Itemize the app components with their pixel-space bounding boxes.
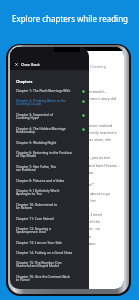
button[interactable]: Chapter 6: Returning to the Position of … — [10, 147, 89, 161]
staticText: came, a little..." — [55, 248, 82, 253]
button[interactable]: Chapter 16: Give the Contract Back to Yu… — [10, 271, 89, 285]
button[interactable]: Chapter 13: I am on Your Side — [10, 237, 89, 247]
staticText: Chapter 11: Cure Hatred — [16, 216, 54, 220]
button[interactable]: Chapter 15: The Number One Shameful and … — [10, 257, 89, 271]
staticText: Chapter 4: The Hidden Marriage Relations… — [16, 126, 66, 134]
staticText: Explore chapters while reading — [12, 13, 128, 24]
button[interactable]: Chapter 1: The Flash Marriage Wife — [10, 85, 89, 95]
staticText: Chapter 1: The Flash Marriage Wife — [16, 88, 71, 92]
button[interactable]: Chapter 10: Determined to be Reborn — [10, 199, 89, 213]
staticText: Chapter 12: Securing a Spokesperson Deal — [16, 226, 52, 234]
staticText: "Are you hungry now?" — [55, 182, 95, 187]
staticText: expected, her husband hotel Yoona... — [55, 163, 120, 168]
staticText: downstairs, holding her — [55, 198, 97, 203]
staticText: had said to Han Yufan. — [55, 170, 95, 175]
staticText: answered. "Since Yutou — [55, 241, 96, 246]
staticText: Chapter 16: Give the Contract Back to Yu… — [16, 274, 70, 282]
staticText: Chapter 14: Putting on a Good Show — [16, 250, 73, 254]
staticText: The assistant came, about to go — [55, 191, 111, 196]
staticText: that the man she secretly married a — [55, 130, 117, 135]
button[interactable]: Chapter 14: Putting on a Good Show — [10, 247, 89, 257]
staticText: Chapter 13: I am on Your Side — [16, 240, 62, 244]
staticText: year ago. After all was done, she — [55, 137, 112, 142]
staticText: Chapter 15: The Number One Shameful and … — [16, 260, 62, 268]
button[interactable]: Chapter 11: Cure Hatred — [10, 213, 89, 223]
staticText: Chapter 5: Wedding Night — [16, 140, 57, 144]
staticText: Cheating — [90, 64, 107, 69]
staticText: Chapter 7: Han Yufan, You are Ruthless! — [16, 164, 57, 172]
staticText: Chapter 8: Pictures and a Video — [16, 178, 65, 182]
button[interactable]: Chapter 5: Wedding Night — [10, 137, 89, 147]
button[interactable]: Chapter 9: I Definitely Won't Apologize … — [10, 185, 89, 199]
staticText: "I'm sorry... I know... I need — [55, 212, 102, 217]
staticText: problem." Han Yufan — [55, 234, 92, 239]
button[interactable]: Chapter 12: Securing a Spokesperson Deal — [10, 223, 89, 237]
button[interactable]: Chapter 7: Han Yufan, You are Ruthless! — [10, 161, 89, 175]
staticText: Close Book — [21, 62, 40, 67]
button[interactable]: Chapter 3: Suspected of Coveting Hype — [10, 109, 89, 123]
staticText: Chapter 6: Returning to the Position of … — [16, 150, 72, 158]
button[interactable]: Chapter 4: The Hidden Marriage Relations… — [10, 123, 89, 137]
staticText: Chapter 3: Suspected of Coveting Hype — [16, 112, 53, 120]
staticText: company that's thank - no — [55, 226, 100, 231]
staticText: Han Yufan and Lin Yumo's story did — [55, 96, 117, 101]
button[interactable]: Chapter 8: Pictures and a Video — [10, 175, 89, 185]
button[interactable]: Close — [10, 47, 89, 70]
other: Close — [15, 63, 18, 66]
staticText: Chapters — [16, 79, 33, 84]
button[interactable]: Chapter 2: Drinking Alone at the Covetin… — [10, 95, 89, 109]
staticText: only had a marriage, just as she — [55, 155, 110, 160]
staticText: Chapter 2: Drinking Alone at the Covetin… — [16, 98, 66, 106]
staticText: Back then she had never realized — [55, 123, 113, 128]
staticText: to go back now. I'll tell the — [55, 219, 101, 224]
staticText: Chapter 9: I Definitely Won't Apologize … — [16, 188, 60, 196]
staticText: Lin Yumo was a supermodel... — [55, 89, 107, 94]
staticText: Chapter 10: Determined to be Reborn — [16, 202, 58, 210]
